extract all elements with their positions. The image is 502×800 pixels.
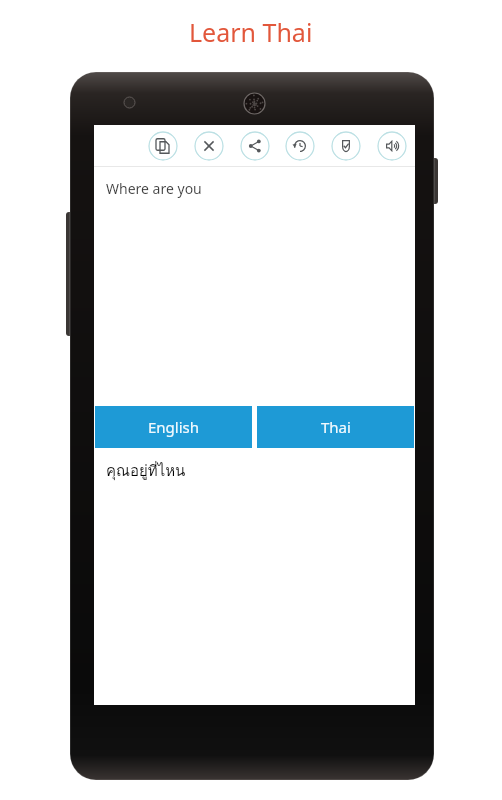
staticText: Thai: [321, 417, 351, 437]
button[interactable]: Clear: [194, 131, 224, 161]
staticText: English: [148, 417, 200, 437]
button[interactable]: คุณอยู่ที่ไหน: [94, 449, 415, 705]
button[interactable]: Where are you: [94, 167, 415, 405]
button[interactable]: History: [285, 131, 315, 161]
button[interactable]: Share: [240, 131, 270, 161]
button[interactable]: Speak: [377, 131, 407, 161]
button[interactable]: Favourite: [331, 131, 361, 161]
button[interactable]: English: [95, 406, 252, 448]
button[interactable]: Thai: [257, 406, 414, 448]
staticText: Learn Thai: [189, 15, 313, 49]
staticText: Where are you: [106, 179, 202, 198]
button[interactable]: Copy: [148, 131, 178, 161]
staticText: คุณอยู่ที่ไหน: [106, 459, 186, 483]
